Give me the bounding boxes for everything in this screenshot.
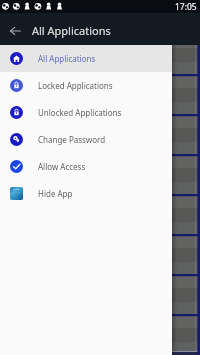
button[interactable]: Unlocked Applications: [0, 99, 172, 126]
staticText: Hide App: [38, 188, 73, 199]
button[interactable]: Locked Applications: [0, 72, 172, 99]
button[interactable]: Change Password: [0, 126, 172, 153]
staticText: Unlocked Applications: [38, 107, 122, 118]
button[interactable]: Back: [5, 19, 25, 39]
button[interactable]: All Applications: [0, 45, 172, 72]
staticText: All Applications: [38, 53, 96, 64]
staticText: Allow Access: [38, 161, 86, 172]
button[interactable]: Hide App: [0, 180, 172, 207]
staticText: 17:05: [175, 1, 197, 13]
staticText: Change Password: [38, 134, 106, 145]
staticText: Locked Applications: [38, 80, 113, 91]
button[interactable]: Allow Access: [0, 153, 172, 180]
staticText: All Applications: [32, 23, 111, 38]
